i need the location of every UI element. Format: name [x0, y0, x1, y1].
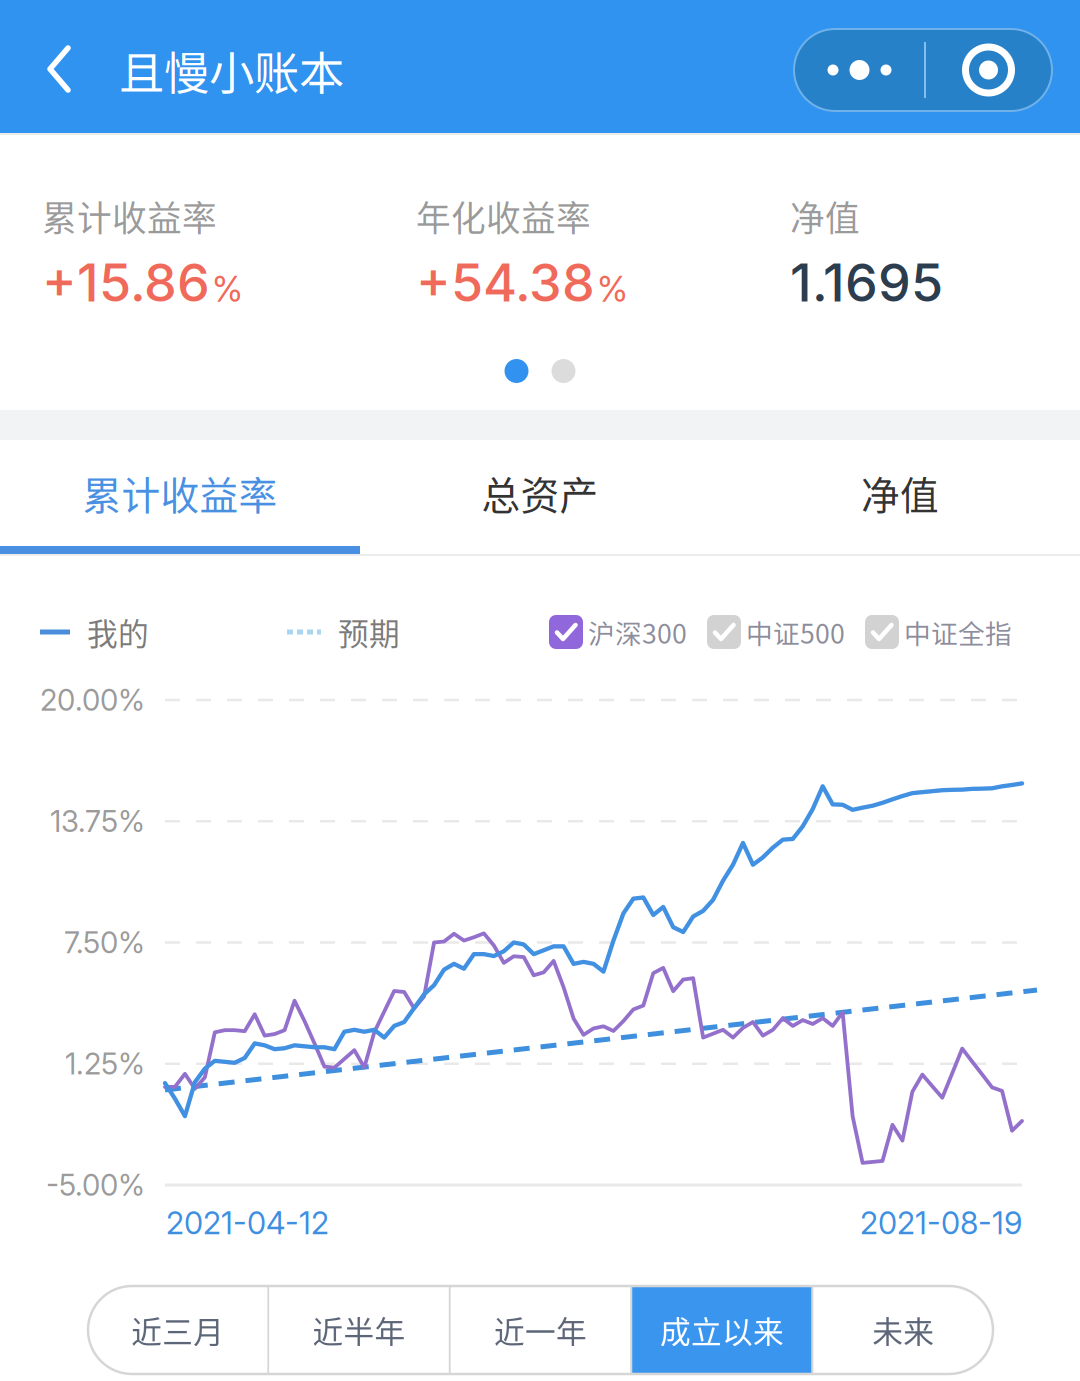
staticText: 我的	[87, 610, 149, 654]
staticText: 沪深300	[588, 613, 687, 651]
button[interactable]: 未来	[814, 1286, 993, 1374]
staticText: 1.25%	[65, 1046, 145, 1081]
staticText: 1.1695	[790, 251, 943, 314]
staticText: +54.38	[416, 251, 595, 314]
staticText: 近三月	[131, 1308, 224, 1352]
button[interactable]: Close	[925, 29, 1052, 111]
staticText: 净值	[861, 465, 939, 521]
staticText: -5.00%	[46, 1167, 145, 1203]
staticText: 近半年	[313, 1308, 406, 1352]
staticText: 累计收益率	[82, 465, 277, 521]
staticText: 累计收益率	[42, 191, 217, 241]
staticText: 7.50%	[64, 925, 145, 960]
staticText: 近一年	[494, 1308, 587, 1352]
button[interactable]: 累计收益率	[0, 440, 360, 554]
staticText: 中证全指	[904, 613, 1012, 651]
button[interactable]: Back	[22, 3, 98, 135]
staticText: 成立以来	[660, 1308, 784, 1352]
button[interactable]: 近半年	[269, 1286, 449, 1374]
button[interactable]: 总资产	[360, 440, 720, 554]
button[interactable]: 净值	[720, 440, 1080, 554]
staticText: 总资产	[481, 465, 598, 521]
button[interactable]: 成立以来	[632, 1286, 812, 1374]
staticText: 13.75%	[50, 803, 145, 839]
staticText: 年化收益率	[416, 191, 591, 241]
button[interactable]: 近一年	[451, 1286, 630, 1374]
button[interactable]: More	[794, 29, 925, 111]
staticText: 且慢小账本	[119, 38, 344, 103]
staticText: 2021-08-19	[860, 1204, 1022, 1241]
staticText: +15.86	[42, 251, 210, 314]
staticText: %	[212, 268, 243, 310]
staticText: %	[597, 268, 628, 310]
button[interactable]: 近三月	[88, 1286, 267, 1374]
button[interactable]: 中证全指	[865, 608, 1014, 656]
staticText: 中证500	[746, 613, 845, 651]
staticText: 20.00%	[40, 682, 145, 718]
button[interactable]: 中证500	[707, 608, 846, 656]
staticText: 净值	[790, 191, 860, 241]
staticText: 预期	[338, 610, 400, 654]
staticText: 未来	[872, 1308, 934, 1352]
staticText: 2021-04-12	[166, 1204, 329, 1241]
button[interactable]: 沪深300	[549, 608, 688, 656]
